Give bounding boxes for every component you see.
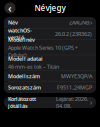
button[interactable]: Vissza: [3, 1, 17, 15]
button[interactable]: Név: [4, 17, 96, 28]
button[interactable]: Sorozatszám: [4, 82, 96, 93]
staticText: Lejárat: 2026. 04. 08.: [56, 95, 88, 110]
staticText: 26.0.2 (23R362): [55, 30, 92, 37]
button[interactable]: Korlátozott jótállás: [4, 97, 96, 108]
staticText: Modellszám: [8, 73, 40, 80]
staticText: MWYE3QP/A: [61, 73, 92, 80]
staticText: ZAAGNB: [69, 19, 89, 26]
staticText: Névjegy: [34, 3, 65, 13]
button[interactable]: Modell adatai: [4, 55, 96, 70]
staticText: F9511..24MGP: [57, 84, 92, 91]
staticText: Modell adatai: [8, 55, 43, 62]
staticText: ›: [90, 98, 92, 107]
button[interactable]: Modellnév: [4, 40, 96, 55]
button[interactable]: Modellszám: [4, 71, 96, 82]
staticText: Korlátozott jótállás: [8, 95, 36, 110]
staticText: ‹: [8, 1, 12, 15]
staticText: Név: [8, 19, 18, 26]
staticText: ›: [90, 18, 92, 27]
staticText: Sorozatszám: [8, 84, 41, 91]
staticText: 46 mm-es tok – Titán: [8, 63, 59, 70]
staticText: watchOS-verzió: [8, 27, 32, 41]
button[interactable]: watchOS-verzió: [4, 28, 96, 39]
staticText: Apple Watch Series 10 (GPS + Cellular): [8, 44, 78, 58]
staticText: Modellnév: [8, 36, 35, 43]
